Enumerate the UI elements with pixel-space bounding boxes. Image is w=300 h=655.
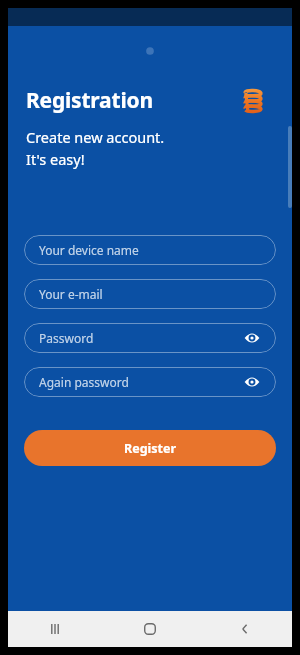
staticText: Register xyxy=(124,440,177,457)
button[interactable]: Your device name xyxy=(24,235,276,265)
button[interactable]: Back xyxy=(197,611,292,647)
button[interactable]: Show password xyxy=(243,373,261,391)
staticText: Create new account. xyxy=(26,127,165,147)
button[interactable]: Recents xyxy=(8,611,102,647)
button[interactable]: Your e-mail xyxy=(24,279,276,309)
staticText: Password xyxy=(39,330,94,346)
button[interactable]: Again password xyxy=(24,367,276,397)
button[interactable]: Register xyxy=(24,430,276,466)
staticText: Your device name xyxy=(39,242,139,258)
staticText: Your e-mail xyxy=(39,286,103,302)
staticText: Registration xyxy=(26,86,153,115)
staticText: Again password xyxy=(39,374,129,390)
button[interactable]: Password xyxy=(24,323,276,353)
button[interactable]: Show password xyxy=(243,329,261,347)
staticText: It's easy! xyxy=(26,149,85,169)
button[interactable]: Home xyxy=(102,611,197,647)
